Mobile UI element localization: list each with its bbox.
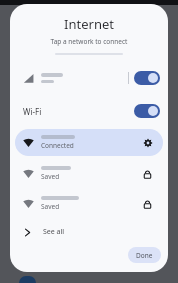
staticText: See all: [43, 227, 65, 237]
button[interactable]: Network settings: [140, 135, 156, 151]
button[interactable]: Done: [128, 247, 161, 263]
button[interactable]: Secured network: [141, 168, 153, 180]
button[interactable]: Secured network: [141, 198, 153, 210]
staticText: Connected: [41, 141, 74, 150]
staticText: Tap a network to connect: [10, 37, 168, 46]
button[interactable]: Saved: [10, 190, 168, 217]
staticText: Wi-Fi: [23, 106, 42, 117]
button[interactable]: Toggle: [10, 65, 168, 91]
button[interactable]: Toggle: [134, 71, 160, 85]
staticText: Saved: [41, 202, 60, 211]
staticText: Internet: [10, 15, 168, 33]
button[interactable]: See all: [10, 221, 168, 243]
staticText: Done: [136, 251, 153, 260]
button[interactable]: Toggle: [134, 104, 160, 118]
button[interactable]: Saved: [10, 160, 168, 187]
button[interactable]: Wi-Fi: [10, 100, 168, 122]
staticText: Saved: [41, 172, 60, 181]
button[interactable]: Connected: [15, 129, 163, 156]
